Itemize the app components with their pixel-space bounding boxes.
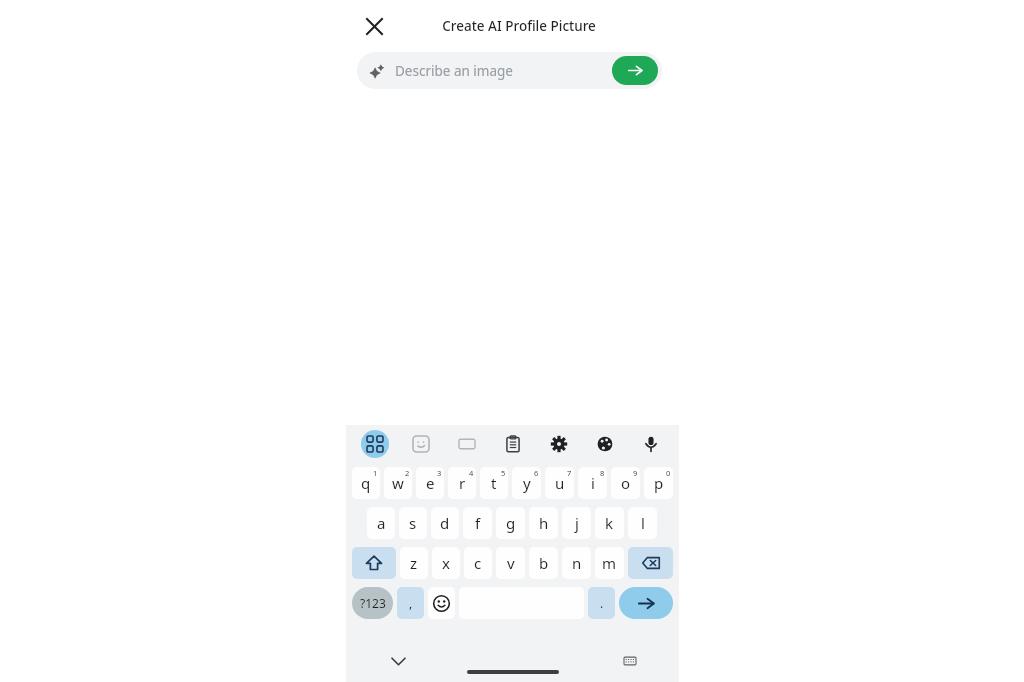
staticText: v (507, 553, 515, 573)
staticText: Create AI Profile Picture (442, 17, 596, 35)
staticText: l (641, 513, 645, 533)
button[interactable]: ?123 (352, 587, 393, 619)
button[interactable]: Themes (582, 425, 628, 463)
staticText: 7 (567, 468, 572, 478)
button[interactable]: q (352, 467, 380, 499)
staticText: g (506, 513, 516, 533)
button[interactable]: f (463, 507, 492, 539)
button[interactable]: e (416, 467, 444, 499)
button[interactable]: Backspace (628, 547, 673, 579)
staticText: i (591, 473, 595, 493)
staticText: w (392, 473, 404, 493)
button[interactable]: h (529, 507, 558, 539)
staticText: Describe an image (395, 62, 612, 80)
button[interactable]: Generate (612, 56, 658, 85)
staticText: b (539, 553, 549, 573)
button[interactable]: a (367, 507, 395, 539)
button[interactable]: x (432, 547, 460, 579)
button[interactable]: v (496, 547, 525, 579)
staticText: . (600, 595, 604, 611)
staticText: c (474, 553, 482, 573)
button[interactable]: k (595, 507, 624, 539)
button[interactable]: Apps (351, 425, 398, 463)
staticText: a (377, 513, 386, 533)
button[interactable]: y (512, 467, 541, 499)
staticText: d (440, 513, 450, 533)
button[interactable]: Switch keyboard (619, 650, 641, 672)
button[interactable]: Describe an image (357, 52, 662, 89)
staticText: 6 (534, 468, 539, 478)
staticText: h (539, 513, 549, 533)
button[interactable]: i (578, 467, 607, 499)
staticText: p (654, 473, 664, 493)
button[interactable]: GIF (444, 425, 490, 463)
button[interactable]: u (545, 467, 574, 499)
staticText: 4 (469, 468, 474, 478)
button[interactable]: g (496, 507, 525, 539)
button[interactable]: Enter (619, 587, 673, 619)
staticText: , (409, 595, 413, 611)
staticText: y (523, 473, 531, 493)
staticText: x (442, 553, 450, 573)
button[interactable]: o (611, 467, 640, 499)
staticText: 9 (633, 468, 638, 478)
button[interactable]: n (562, 547, 591, 579)
button[interactable]: z (400, 547, 428, 579)
staticText: q (361, 473, 371, 493)
staticText: f (475, 513, 481, 533)
button[interactable]: p (644, 467, 673, 499)
staticText: 2 (405, 468, 410, 478)
staticText: m (602, 553, 617, 573)
button[interactable]: r (448, 467, 476, 499)
button[interactable]: s (399, 507, 427, 539)
staticText: u (555, 473, 565, 493)
button[interactable]: Clipboard (490, 425, 536, 463)
button[interactable]: l (628, 507, 657, 539)
button[interactable]: Shift (352, 547, 396, 579)
staticText: n (572, 553, 582, 573)
staticText: 1 (373, 468, 378, 478)
button[interactable]: b (529, 547, 558, 579)
staticText: 0 (666, 468, 671, 478)
staticText: t (491, 473, 497, 493)
staticText: 5 (501, 468, 506, 478)
button[interactable]: Settings (536, 425, 582, 463)
staticText: ?123 (360, 595, 386, 611)
button[interactable]: d (431, 507, 459, 539)
button[interactable]: Hide keyboard (386, 649, 410, 673)
button[interactable]: c (464, 547, 492, 579)
staticText: z (410, 553, 418, 573)
staticText: o (621, 473, 631, 493)
button[interactable]: t (480, 467, 508, 499)
staticText: e (426, 473, 435, 493)
staticText: r (459, 473, 466, 493)
button[interactable]: Voice input (628, 425, 674, 463)
staticText: k (605, 513, 614, 533)
staticText: j (575, 513, 579, 533)
button[interactable]: . (588, 587, 615, 619)
button[interactable]: j (562, 507, 591, 539)
button[interactable]: w (384, 467, 412, 499)
staticText: 3 (437, 468, 442, 478)
button[interactable]: Emoji (428, 587, 455, 619)
button[interactable]: , (397, 587, 424, 619)
staticText: s (409, 513, 417, 533)
button[interactable]: Stickers (398, 425, 444, 463)
button[interactable]: Close (358, 10, 390, 42)
button[interactable]: m (595, 547, 624, 579)
staticText: 8 (600, 468, 605, 478)
